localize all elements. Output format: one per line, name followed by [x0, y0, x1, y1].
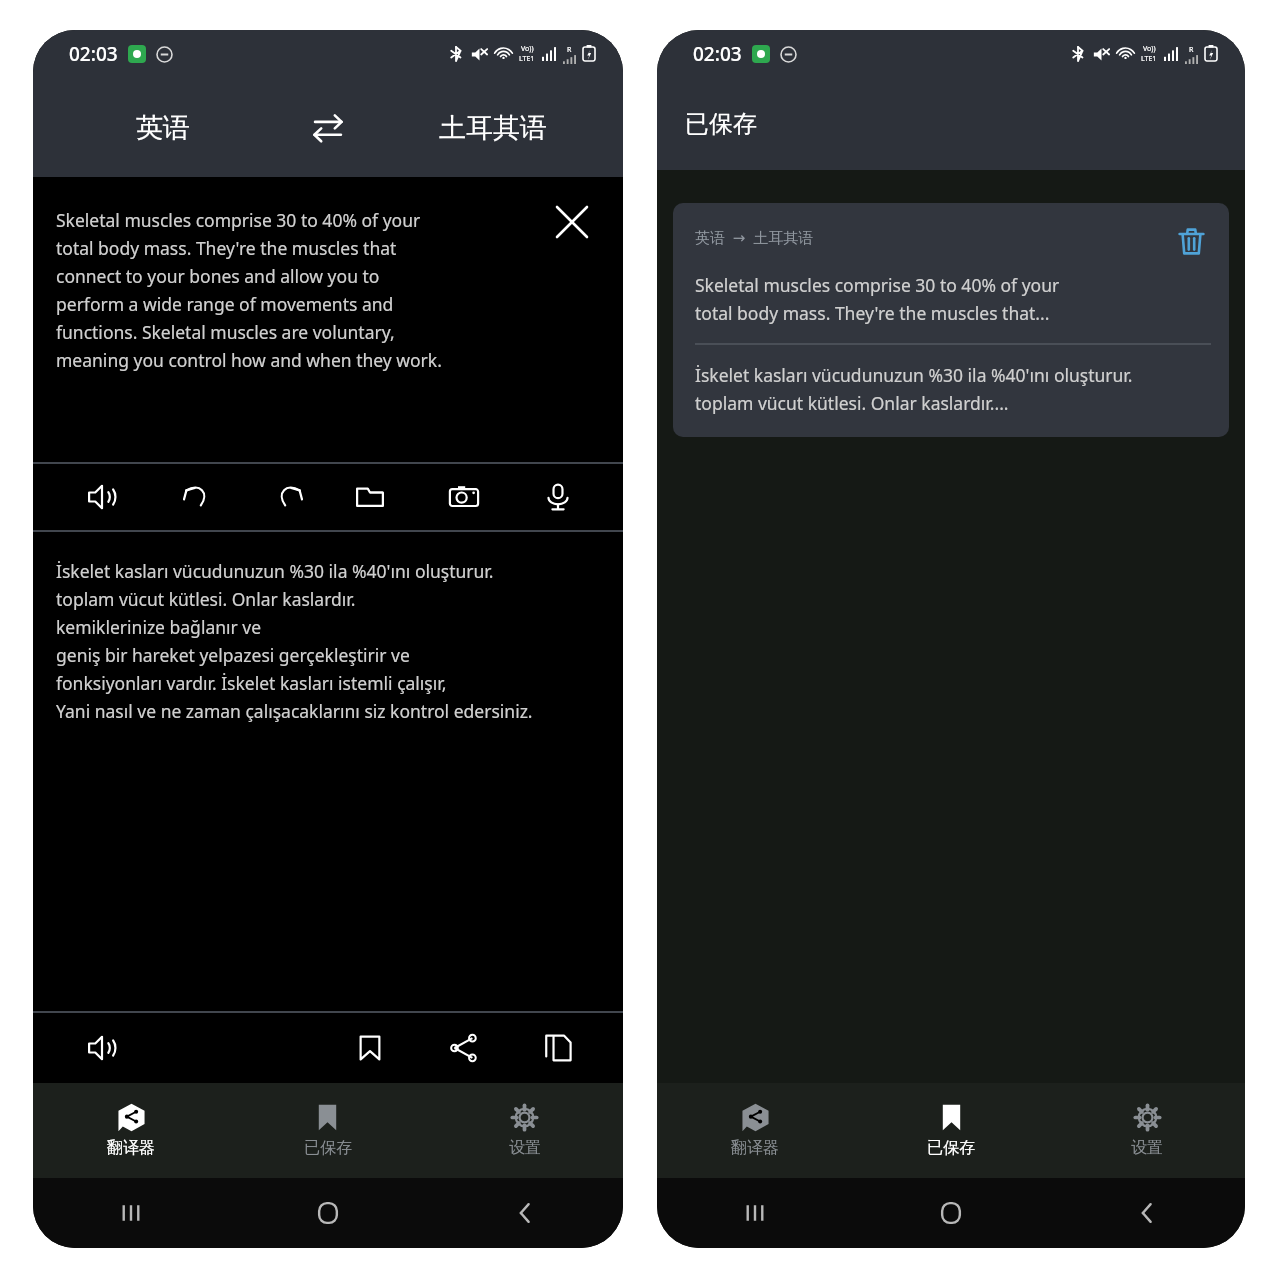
staticText: LTE1 — [1141, 54, 1157, 64]
button[interactable]: Copy — [531, 1021, 585, 1075]
button[interactable]: Home — [853, 1178, 1049, 1248]
button[interactable]: 设置 — [426, 1083, 623, 1178]
button[interactable]: 翻译器 — [33, 1083, 229, 1178]
staticText: 02:03 — [693, 41, 742, 67]
button[interactable]: 英语 → 土耳其语 — [673, 203, 1229, 437]
staticText: 翻译器 — [107, 1138, 155, 1158]
button[interactable]: 已保存 — [853, 1083, 1049, 1178]
button[interactable]: Back — [1049, 1178, 1245, 1248]
staticText: 土耳其语 — [439, 111, 547, 145]
staticText: Skeletal muscles comprise 30 to 40% of y… — [695, 273, 1060, 325]
button[interactable]: Clear text — [545, 195, 599, 249]
staticText: 翻译器 — [731, 1138, 779, 1158]
staticText: Vo)) — [1143, 44, 1156, 54]
button[interactable]: Redo — [263, 470, 317, 524]
button[interactable]: Share — [437, 1021, 491, 1075]
button[interactable]: Recents — [657, 1178, 853, 1248]
button[interactable]: Bookmark — [343, 1021, 397, 1075]
button[interactable]: Microphone — [531, 470, 585, 524]
button[interactable]: Undo — [169, 470, 223, 524]
button[interactable]: Speak — [75, 470, 129, 524]
button[interactable]: Delete — [1171, 221, 1211, 261]
staticText: Skeletal muscles comprise 30 to 40% of y… — [56, 208, 442, 372]
button[interactable]: Back — [426, 1178, 623, 1248]
button[interactable]: 土耳其语 — [363, 78, 623, 177]
button[interactable]: Swap languages — [293, 93, 363, 163]
staticText: 02:03 — [69, 41, 118, 67]
staticText: 已保存 — [927, 1138, 975, 1158]
button[interactable]: Speak translation — [75, 1021, 129, 1075]
button[interactable]: 已保存 — [229, 1083, 426, 1178]
staticText: Vo)) — [521, 44, 534, 54]
button[interactable]: Recents — [33, 1178, 229, 1248]
button[interactable]: Home — [229, 1178, 426, 1248]
staticText: 已保存 — [304, 1138, 352, 1158]
staticText: 英语 → 土耳其语 — [695, 227, 1171, 247]
staticText: 已保存 — [685, 109, 757, 139]
staticText: 设置 — [509, 1138, 541, 1158]
staticText: LTE1 — [519, 54, 535, 64]
staticText: 设置 — [1131, 1138, 1163, 1158]
button[interactable]: 翻译器 — [657, 1083, 853, 1178]
staticText: R — [567, 45, 572, 55]
button[interactable]: 设置 — [1049, 1083, 1245, 1178]
staticText: R — [1189, 45, 1194, 55]
staticText: İskelet kasları vücudunuzun %30 ila %40'… — [695, 363, 1133, 415]
staticText: 英语 — [136, 111, 190, 145]
staticText: İskelet kasları vücudunuzun %30 ila %40'… — [56, 559, 533, 723]
button[interactable]: 英语 — [33, 78, 293, 177]
button[interactable]: Files — [343, 470, 397, 524]
button[interactable]: Camera — [437, 470, 491, 524]
